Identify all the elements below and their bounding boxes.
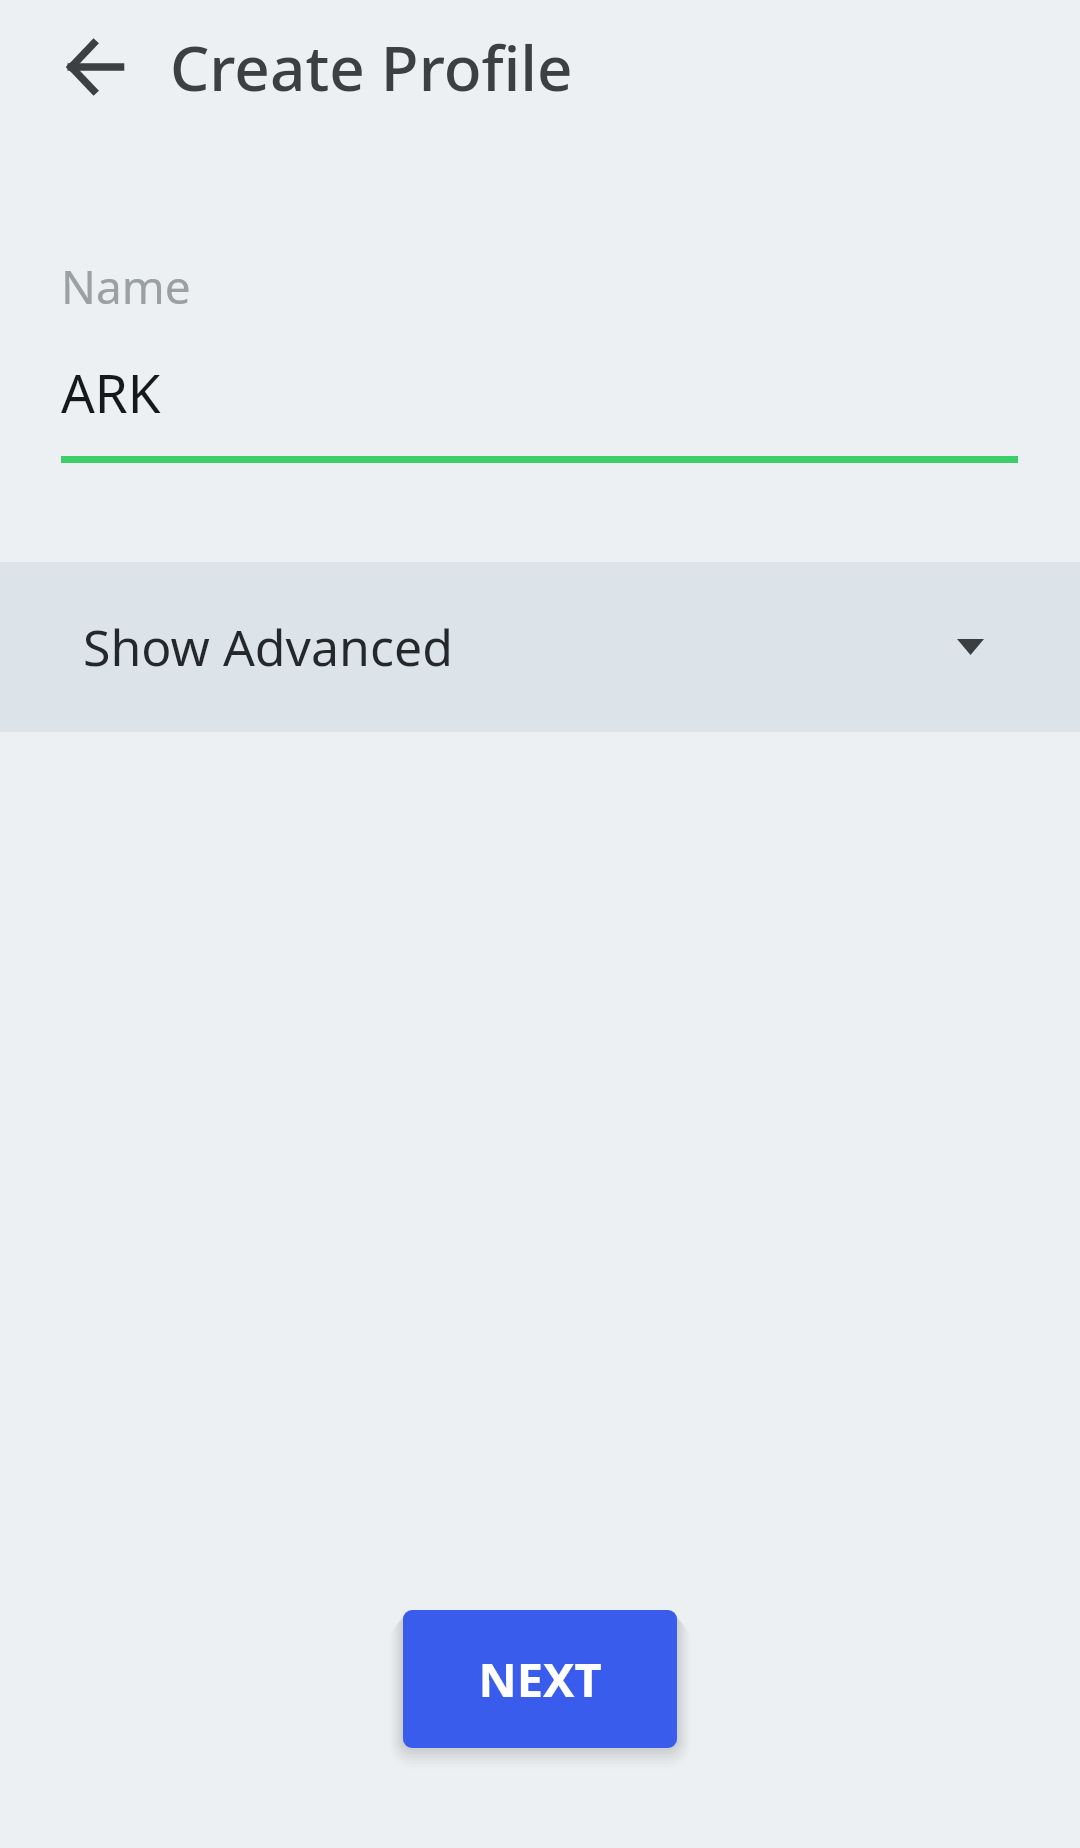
staticText: ARK — [61, 356, 161, 428]
staticText: Name — [61, 255, 191, 318]
button[interactable]: NEXT — [403, 1610, 677, 1748]
staticText: NEXT — [478, 1647, 602, 1711]
button[interactable]: Show Advanced — [0, 562, 1080, 732]
button[interactable]: Back — [49, 19, 145, 115]
staticText: Show Advanced — [83, 613, 453, 681]
button[interactable]: ARK — [0, 356, 1080, 428]
staticText: Create Profile — [170, 25, 573, 109]
